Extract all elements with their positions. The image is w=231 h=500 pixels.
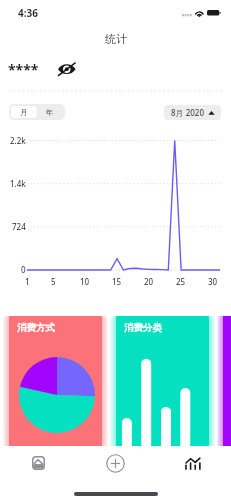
staticText: 25 xyxy=(176,276,186,286)
staticText: 20 xyxy=(144,276,154,286)
staticText: 消费方式 xyxy=(17,322,55,334)
button[interactable]: Add entry xyxy=(77,448,154,478)
staticText: 统计 xyxy=(105,32,127,46)
button[interactable]: 8月 2020 xyxy=(164,105,221,120)
staticText: 5 xyxy=(51,276,56,286)
button[interactable]: 年 xyxy=(37,106,63,118)
staticText: 724 xyxy=(12,221,26,231)
staticText: 1.4k xyxy=(10,178,26,188)
staticText: 10 xyxy=(80,276,90,286)
staticText: 1 xyxy=(25,276,30,286)
button[interactable]: 消费方式 xyxy=(9,316,102,446)
staticText: 月 xyxy=(20,108,28,117)
staticText: 0 xyxy=(21,264,26,274)
button[interactable]: Records xyxy=(0,448,77,478)
staticText: **** xyxy=(8,60,39,78)
button[interactable]: Statistics xyxy=(154,448,231,478)
staticText: 4:36 xyxy=(18,6,38,20)
button[interactable]: 月 xyxy=(11,106,37,118)
button[interactable]: 消费分类 xyxy=(116,316,209,446)
staticText: 年 xyxy=(46,108,54,117)
staticText: 15 xyxy=(112,276,122,286)
staticText: 消费分类 xyxy=(124,322,162,334)
staticText: 2.2k xyxy=(10,135,26,145)
button[interactable]: Hide amount xyxy=(58,63,77,76)
staticText: 30 xyxy=(208,276,218,286)
staticText: 8月 2020 xyxy=(171,107,204,118)
